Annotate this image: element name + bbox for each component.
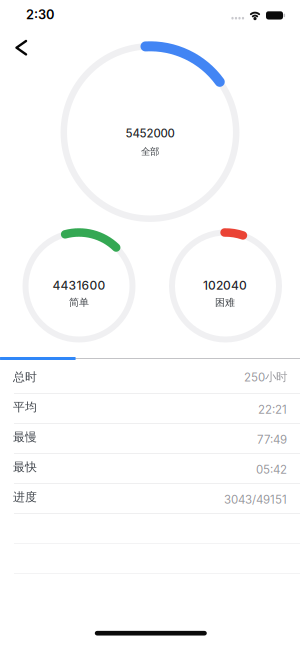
staticText: 平均 bbox=[13, 399, 37, 414]
staticText: 77:49 bbox=[257, 433, 287, 446]
staticText: 3043/49151 bbox=[224, 493, 287, 506]
staticText: 简单 bbox=[69, 296, 89, 309]
staticText: 总时 bbox=[13, 369, 37, 384]
staticText: 5452000 bbox=[125, 127, 174, 140]
staticText: 困难 bbox=[215, 296, 235, 309]
staticText: 05:42 bbox=[256, 463, 287, 476]
staticText: 进度 bbox=[13, 489, 37, 504]
button[interactable]: Back bbox=[9, 34, 33, 61]
staticText: 最快 bbox=[13, 459, 37, 474]
staticText: 22:21 bbox=[258, 403, 287, 416]
staticText: 250小时 bbox=[244, 370, 287, 384]
staticText: 最慢 bbox=[13, 429, 37, 444]
staticText: 2:30 bbox=[26, 7, 54, 22]
staticText: 4431600 bbox=[52, 278, 105, 293]
button[interactable]: Selected tab bbox=[0, 357, 75, 360]
staticText: 102040 bbox=[203, 278, 247, 293]
staticText: 全部 bbox=[141, 145, 159, 157]
